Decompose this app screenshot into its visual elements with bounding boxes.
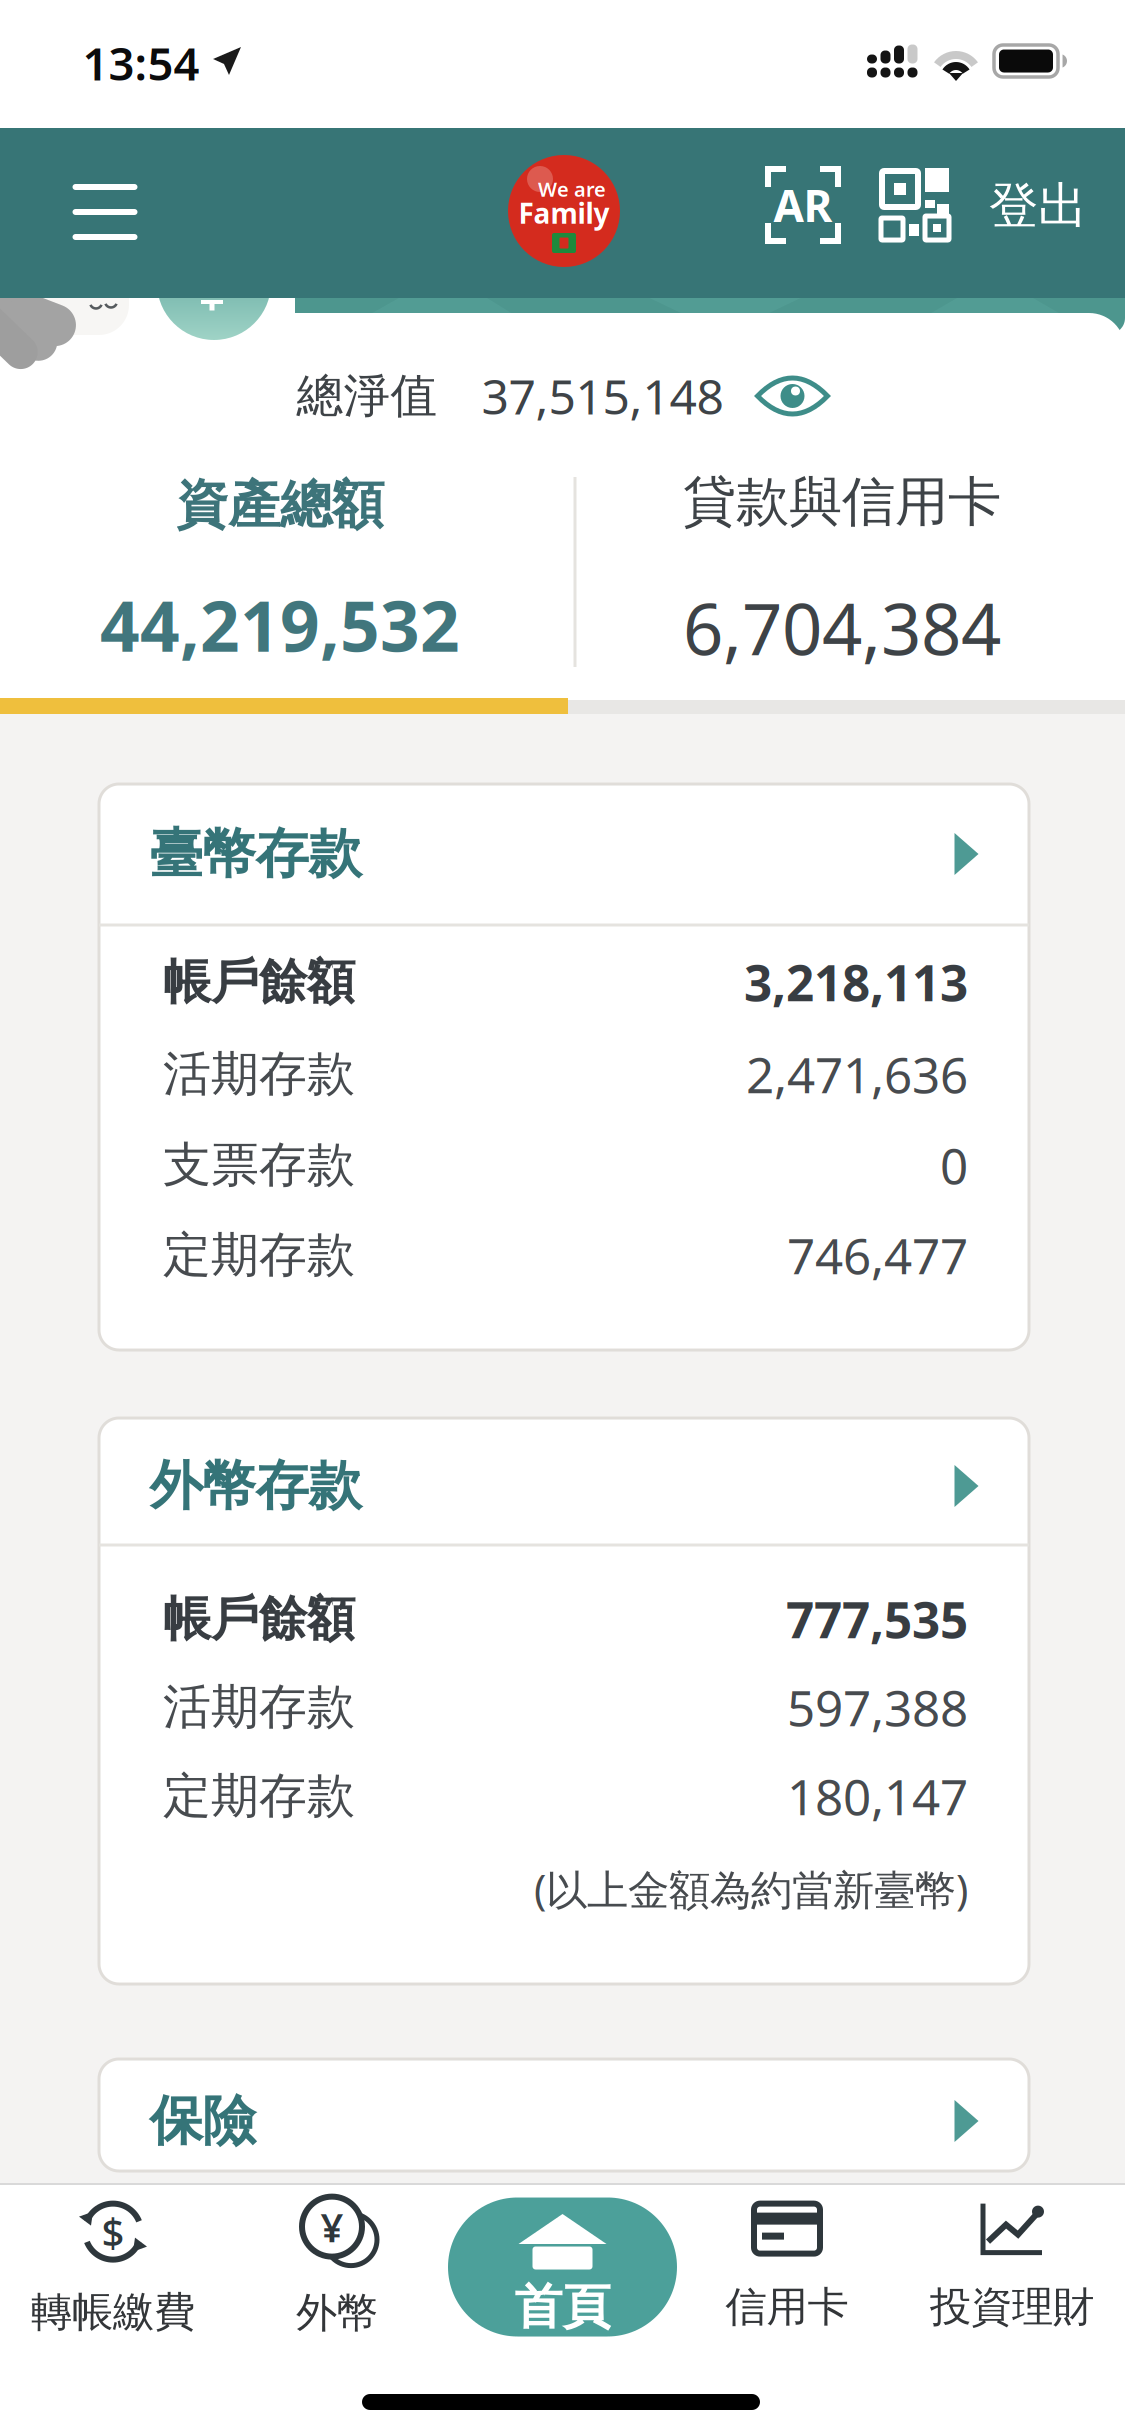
staticText: 轉帳繳費 — [31, 2287, 195, 2337]
staticText: 支票存款 — [163, 1135, 355, 1194]
staticText: 資產總額 — [176, 473, 384, 537]
staticText: 0 — [940, 1132, 968, 1198]
button[interactable]: 首頁 — [448, 2197, 677, 2336]
staticText: 597,388 — [787, 1674, 968, 1740]
staticText: ¥ — [320, 2200, 343, 2253]
button[interactable]: 選單 — [65, 172, 145, 252]
staticText: 定期存款 — [163, 1766, 355, 1825]
staticText: 活期存款 — [163, 1677, 355, 1736]
staticText: 定期存款 — [163, 1225, 355, 1284]
staticText: 746,477 — [787, 1222, 968, 1288]
staticText: 登出 — [989, 176, 1087, 236]
button[interactable]: 掃描 QR Code — [879, 168, 949, 240]
staticText: 貸款與信用卡 — [683, 469, 1001, 535]
button[interactable]: 外幣 — [257, 2188, 417, 2348]
staticText: 2,471,636 — [746, 1041, 968, 1107]
staticText: 活期存款 — [163, 1044, 355, 1103]
button[interactable]: 隱藏金額 — [757, 374, 827, 418]
staticText: 總淨值 — [296, 367, 437, 425]
button[interactable]: 保險 — [149, 2066, 978, 2176]
staticText: 37,515,148 — [481, 364, 723, 428]
staticText: 帳戶餘額 — [163, 1589, 355, 1648]
button[interactable]: 中國信託 — [508, 155, 620, 267]
button[interactable]: 臺幣存款 — [149, 799, 978, 909]
staticText: 外幣 — [296, 2288, 378, 2338]
staticText: 信用卡 — [725, 2282, 848, 2332]
staticText: 13:54 — [82, 33, 199, 93]
button[interactable]: AR — [760, 161, 846, 249]
staticText: 3,218,113 — [744, 949, 968, 1015]
button[interactable]: 轉帳繳費 — [13, 2188, 213, 2348]
staticText: Family — [518, 194, 609, 232]
staticText: 外幣存款 — [149, 1453, 361, 1519]
staticText: 帳戶餘額 — [163, 952, 355, 1011]
button[interactable]: 投資理財 — [912, 2188, 1112, 2348]
button[interactable]: 登出 — [968, 162, 1108, 250]
button[interactable]: 資產總額 — [0, 452, 560, 692]
staticText: 180,147 — [787, 1763, 968, 1829]
staticText: (以上金額為約當新臺幣) — [534, 1862, 968, 1916]
staticText: 首頁 — [514, 2277, 610, 2336]
staticText: AR — [773, 176, 832, 234]
staticText: $ — [101, 2205, 124, 2258]
staticText: 44,219,532 — [100, 579, 460, 671]
staticText: We are — [538, 176, 606, 202]
staticText: 投資理財 — [930, 2282, 1094, 2332]
staticText: 6,704,384 — [683, 581, 1001, 675]
button[interactable]: 外幣存款 — [149, 1431, 978, 1541]
button[interactable]: 信用卡 — [697, 2188, 877, 2348]
staticText: 777,535 — [786, 1586, 968, 1652]
staticText: 臺幣存款 — [149, 821, 361, 887]
staticText: 保險 — [149, 2088, 255, 2154]
button[interactable]: 貸款與信用卡 — [567, 452, 1117, 692]
